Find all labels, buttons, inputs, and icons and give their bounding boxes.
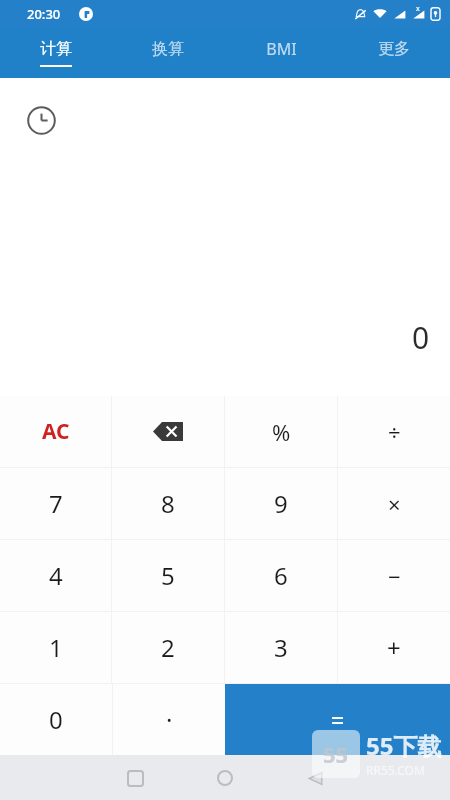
staticText: % xyxy=(272,417,291,447)
button[interactable]: · xyxy=(113,684,225,755)
staticText: 1 xyxy=(49,631,63,664)
staticText: ÷ xyxy=(388,417,401,447)
button[interactable]: 1 xyxy=(0,612,111,683)
staticText: 6 xyxy=(274,559,288,592)
staticText: x xyxy=(416,4,420,14)
staticText: 20:30 xyxy=(27,5,61,23)
button[interactable]: % xyxy=(225,396,337,467)
staticText: AC xyxy=(42,417,70,446)
staticText: 55 xyxy=(323,739,349,769)
staticText: 9 xyxy=(274,487,288,520)
button[interactable]: History xyxy=(27,106,56,135)
button[interactable]: 9 xyxy=(225,468,337,539)
button[interactable]: 计算 xyxy=(0,27,112,78)
staticText: 计算 xyxy=(40,39,72,59)
button[interactable]: 换算 xyxy=(112,27,224,78)
button[interactable]: − xyxy=(338,540,450,611)
button[interactable]: Home xyxy=(210,763,240,793)
staticText: 0 xyxy=(49,703,63,736)
button[interactable]: 2 xyxy=(112,612,224,683)
staticText: 8 xyxy=(161,487,175,520)
staticText: 55下载 xyxy=(366,729,442,762)
button[interactable]: 8 xyxy=(112,468,224,539)
button[interactable]: Backspace xyxy=(112,396,224,467)
staticText: RR55.COM xyxy=(366,762,425,778)
staticText: 更多 xyxy=(378,39,410,59)
button[interactable]: 6 xyxy=(225,540,337,611)
staticText: 换算 xyxy=(152,39,184,59)
staticText: 7 xyxy=(49,487,63,520)
button[interactable]: BMI xyxy=(224,27,337,78)
button[interactable]: × xyxy=(338,468,450,539)
staticText: · xyxy=(166,703,173,736)
staticText: 0 xyxy=(412,317,430,358)
button[interactable]: 4 xyxy=(0,540,111,611)
staticText: 5 xyxy=(161,559,175,592)
button[interactable]: = xyxy=(225,684,450,755)
button[interactable]: 7 xyxy=(0,468,111,539)
button[interactable]: AC xyxy=(0,396,111,467)
staticText: 3 xyxy=(274,631,288,664)
button[interactable]: Back xyxy=(300,763,330,793)
staticText: 2 xyxy=(161,631,175,664)
button[interactable]: 0 xyxy=(0,684,112,755)
button[interactable]: 3 xyxy=(225,612,337,683)
staticText: = xyxy=(331,704,345,735)
button[interactable]: ÷ xyxy=(338,396,450,467)
button[interactable]: + xyxy=(338,612,450,683)
button[interactable]: Recents xyxy=(120,763,150,793)
staticText: BMI xyxy=(266,38,297,60)
staticText: + xyxy=(387,631,401,664)
staticText: − xyxy=(388,561,401,591)
button[interactable]: 更多 xyxy=(337,27,450,78)
staticText: 4 xyxy=(49,559,63,592)
staticText: × xyxy=(388,489,401,519)
button[interactable]: 5 xyxy=(112,540,224,611)
